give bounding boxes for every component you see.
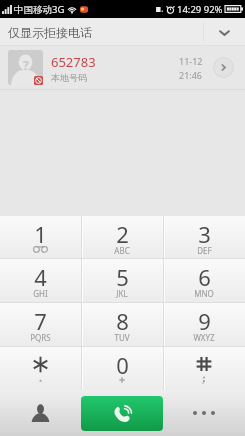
- button[interactable]: Key 1: [0, 216, 81, 258]
- staticText: 1: [34, 219, 47, 249]
- button[interactable]: Key 4: [0, 259, 81, 302]
- staticText: 5: [116, 262, 129, 292]
- staticText: GHI: [33, 288, 48, 299]
- staticText: 6: [198, 262, 211, 292]
- staticText: DEF: [197, 245, 212, 256]
- staticText: JKL: [116, 288, 128, 299]
- button[interactable]: Key 8: [81, 303, 163, 346]
- staticText: 11-12: [179, 55, 203, 67]
- button[interactable]: Key 6: [163, 259, 245, 302]
- button[interactable]: Key 0: [81, 347, 163, 390]
- staticText: 本地号码: [51, 72, 87, 83]
- staticText: 3: [198, 219, 211, 249]
- button[interactable]: Key *: [0, 347, 81, 390]
- button[interactable]: Key 3: [163, 216, 245, 258]
- staticText: 2: [116, 219, 129, 249]
- button[interactable]: Contacts: [0, 390, 81, 436]
- staticText: 0: [116, 350, 129, 380]
- button[interactable]: Key #: [163, 347, 245, 390]
- button[interactable]: Key 2: [81, 216, 163, 258]
- button[interactable]: ?: [0, 46, 245, 89]
- staticText: 652783: [51, 53, 96, 71]
- staticText: 21:46: [179, 69, 203, 81]
- staticText: WXYZ: [193, 332, 215, 343]
- staticText: TUV: [114, 332, 130, 343]
- button[interactable]: Expand filter: [203, 18, 245, 46]
- staticText: MNO: [194, 288, 214, 299]
- staticText: 9: [198, 306, 211, 336]
- button[interactable]: Key 9: [163, 303, 245, 346]
- button[interactable]: Key 7: [0, 303, 81, 346]
- staticText: ?: [23, 57, 29, 73]
- staticText: 7: [34, 306, 47, 336]
- button[interactable]: Call details: [213, 57, 234, 78]
- button[interactable]: Key 5: [81, 259, 163, 302]
- staticText: ABC: [114, 245, 130, 256]
- staticText: 8: [116, 306, 129, 336]
- button[interactable]: Call: [81, 396, 163, 431]
- staticText: PQRS: [30, 332, 51, 343]
- button[interactable]: 仅显示拒接电话: [0, 18, 245, 46]
- staticText: 14:29 92%: [177, 3, 223, 16]
- staticText: 中国移动3G: [14, 3, 65, 16]
- staticText: 仅显示拒接电话: [8, 25, 92, 40]
- staticText: 4: [34, 262, 47, 292]
- button[interactable]: More options: [163, 390, 245, 436]
